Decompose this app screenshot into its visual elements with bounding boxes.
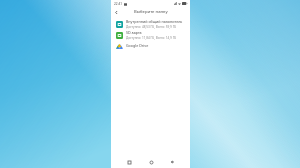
button[interactable]: Back: [113, 9, 120, 16]
staticText: SD-карта: [126, 30, 142, 35]
staticText: 22:41: [114, 2, 123, 6]
button[interactable]: Внутренний общий накопитель: [111, 18, 190, 29]
staticText: Google Drive: [126, 43, 149, 48]
button[interactable]: Recents: [125, 158, 133, 166]
button[interactable]: Home: [147, 158, 155, 166]
staticText: Внутренний общий накопитель: [126, 19, 183, 24]
button[interactable]: SD-карта: [111, 29, 190, 40]
button[interactable]: Google Drive: [111, 40, 190, 51]
button[interactable]: Back: [168, 158, 176, 166]
staticText: Доступно: 48,53 ГБ, Всего: 59,9 ГБ: [126, 25, 177, 29]
staticText: Выберите папку: [134, 9, 168, 15]
staticText: Доступно: 11,84 ГБ, Всего: 14,9 ГБ: [126, 36, 177, 40]
